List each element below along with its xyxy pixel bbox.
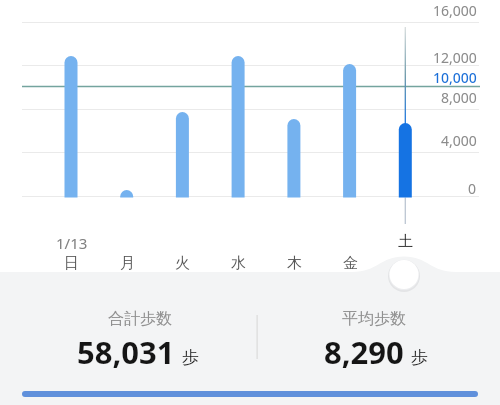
staticText: 8,000: [441, 88, 477, 107]
button[interactable]: 月: [105, 250, 149, 276]
staticText: 歩: [182, 347, 199, 368]
button[interactable]: 土: [383, 228, 427, 254]
staticText: 12,000: [433, 48, 477, 67]
button[interactable]: 58,031: [48, 331, 228, 371]
button[interactable]: [388, 258, 420, 290]
staticText: 月: [120, 254, 135, 273]
staticText: 平均歩数: [342, 309, 406, 329]
button[interactable]: 木: [272, 250, 316, 276]
staticText: 水: [231, 254, 246, 273]
staticText: 4,000: [441, 131, 477, 150]
staticText: 火: [175, 254, 190, 273]
staticText: 1/13: [56, 233, 88, 253]
button[interactable]: 日: [49, 250, 93, 276]
button[interactable]: 金: [328, 250, 372, 276]
button[interactable]: 水: [216, 250, 260, 276]
staticText: 金: [343, 254, 358, 273]
button[interactable]: 8,290: [286, 331, 466, 371]
staticText: 8,290: [324, 331, 404, 371]
staticText: 土: [398, 232, 413, 251]
staticText: 合計歩数: [108, 309, 172, 329]
staticText: 日: [64, 254, 79, 273]
staticText: 16,000: [433, 1, 477, 20]
button[interactable]: 火: [160, 250, 204, 276]
staticText: 歩: [411, 347, 428, 368]
staticText: 木: [287, 254, 302, 273]
staticText: 0: [468, 179, 477, 198]
staticText: 58,031: [77, 331, 175, 371]
staticText: 10,000: [433, 68, 477, 87]
